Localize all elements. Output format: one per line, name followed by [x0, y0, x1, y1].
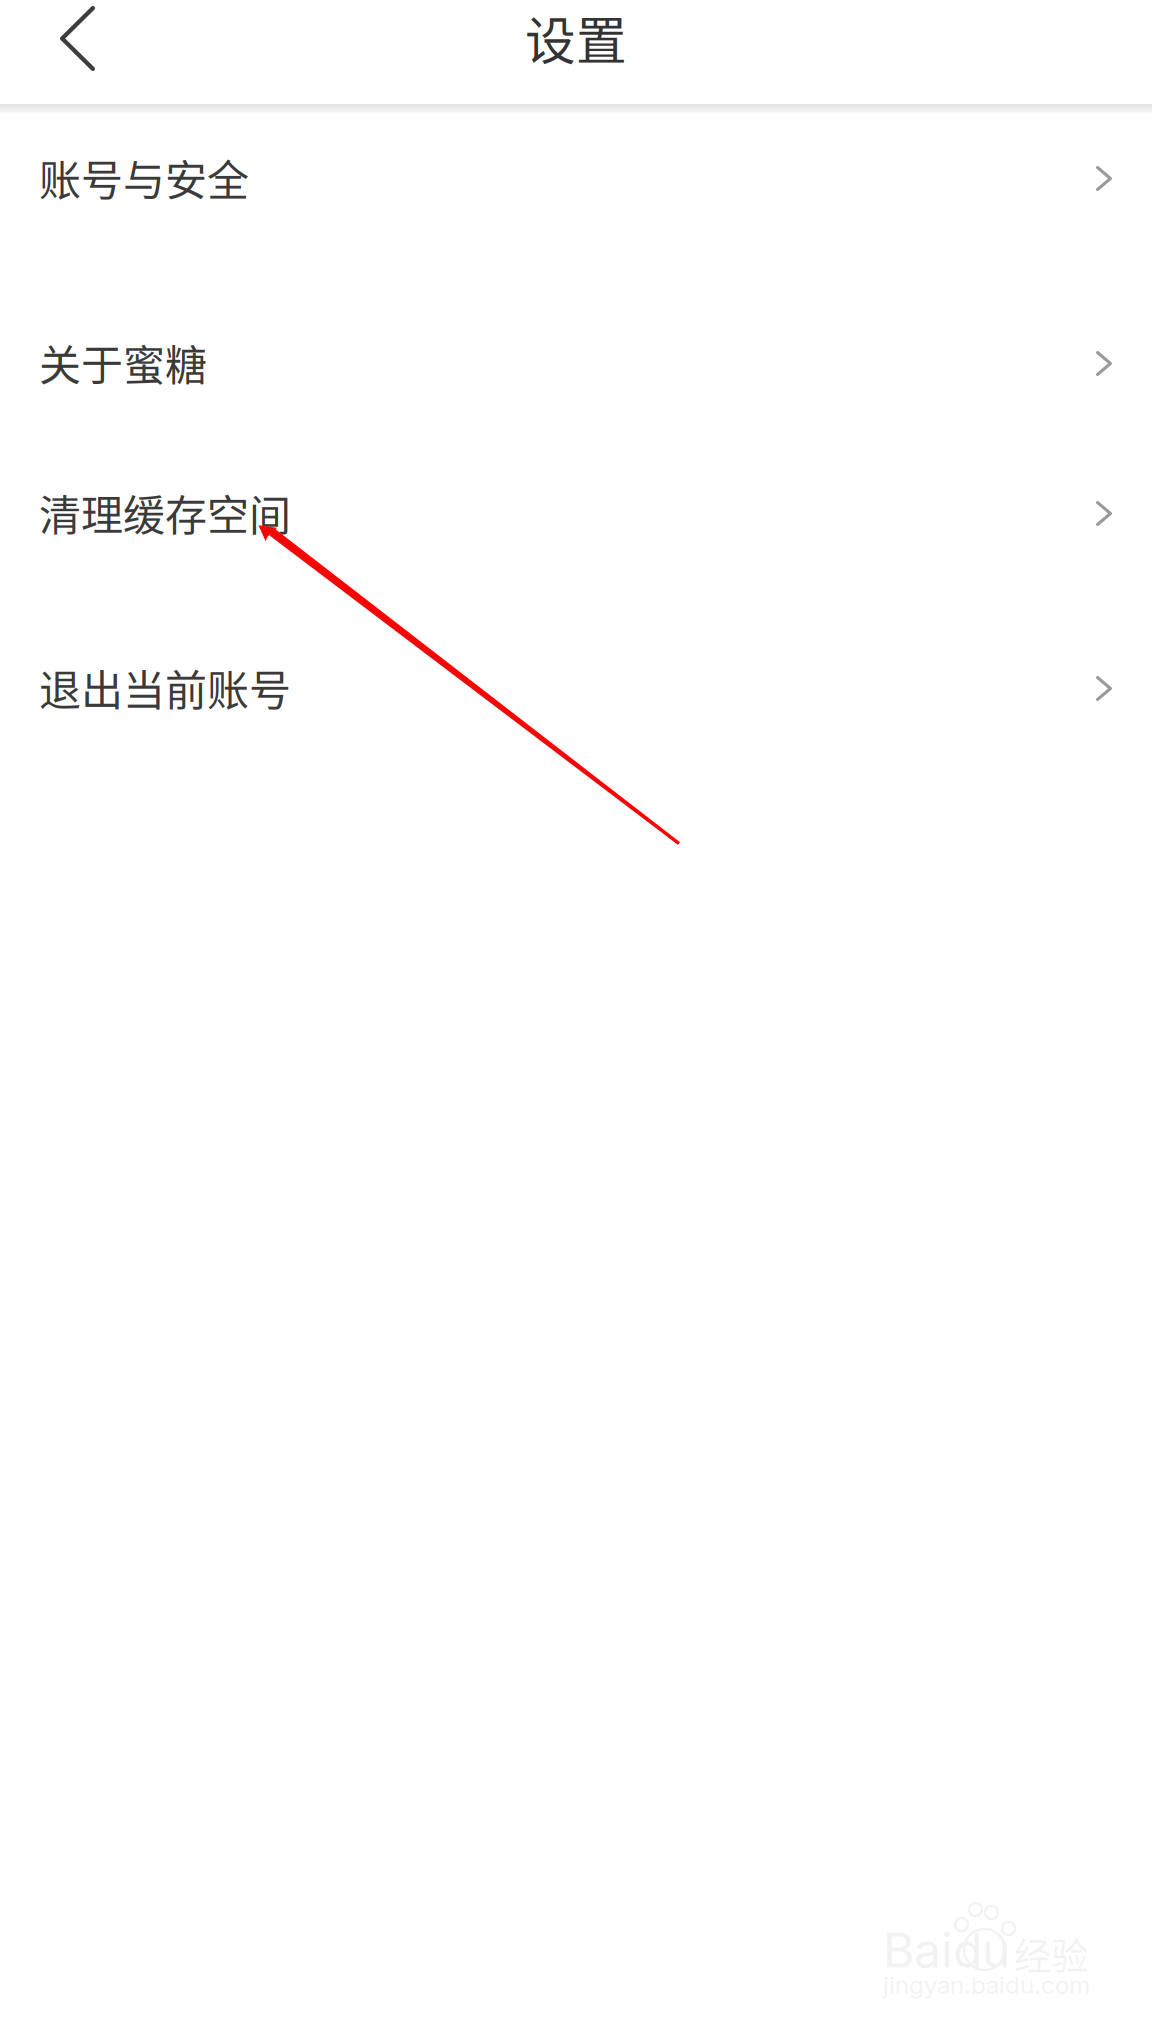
staticText: 设置	[525, 1, 627, 74]
staticText: jingyan.baidu.com	[883, 1970, 1090, 1999]
button[interactable]: 退出当前账号	[0, 615, 1152, 765]
staticText: 账号与安全	[39, 147, 249, 208]
staticText: 经验	[1014, 1927, 1088, 1981]
button[interactable]: 账号与安全	[0, 114, 1152, 254]
staticText: 清理缓存空间	[39, 482, 291, 543]
button[interactable]: Back	[0, 0, 140, 102]
button[interactable]: 清理缓存空间	[0, 440, 1152, 590]
staticText: 关于蜜糖	[39, 332, 207, 393]
staticText: Baidu	[883, 1921, 1010, 1979]
button[interactable]: 关于蜜糖	[0, 290, 1152, 440]
staticText: 退出当前账号	[39, 657, 291, 718]
